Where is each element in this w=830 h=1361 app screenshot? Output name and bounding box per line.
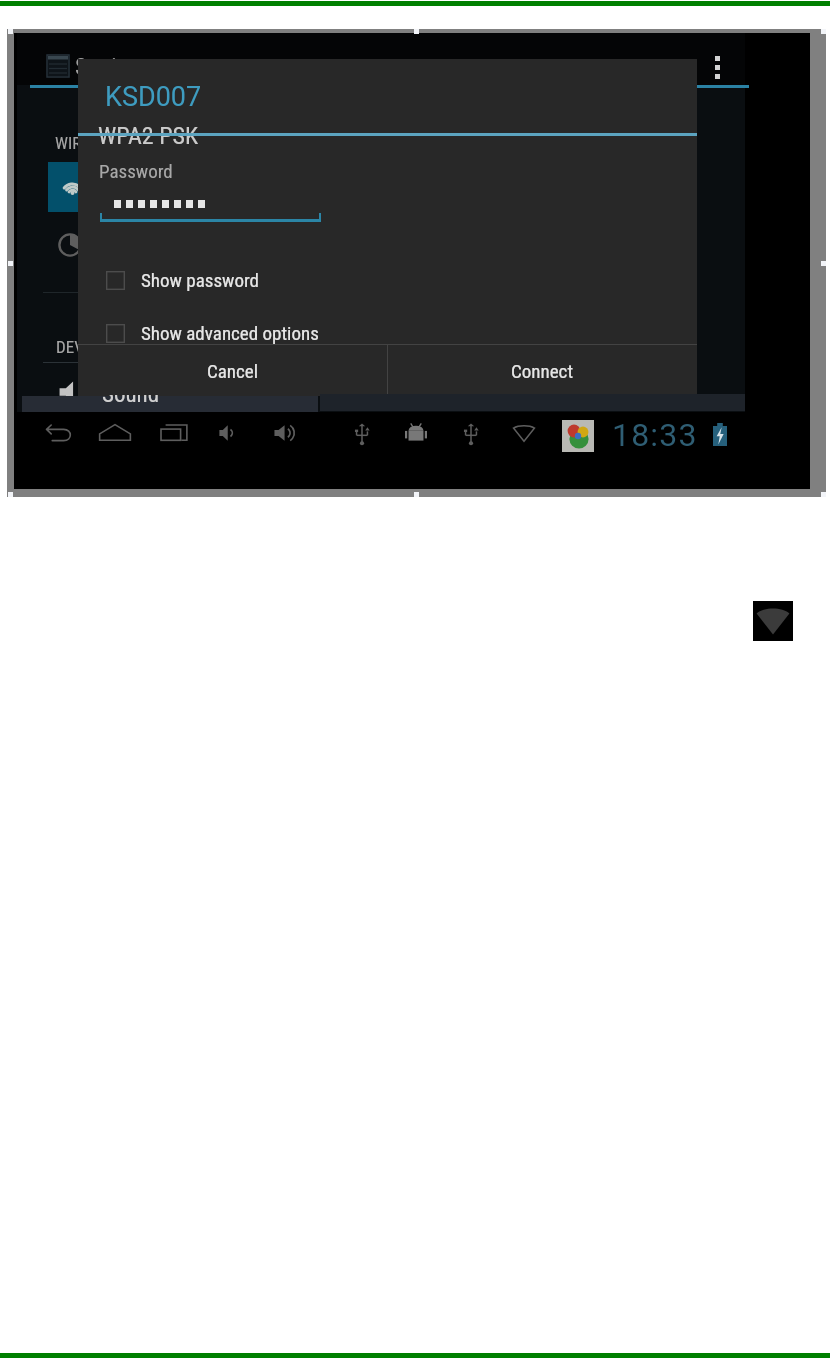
button[interactable]: Sound	[58, 379, 84, 405]
button[interactable]: Wi-Fi signal	[753, 601, 793, 641]
staticText: DEVICE	[56, 337, 107, 357]
staticText: Show advanced options	[141, 322, 319, 344]
other: USB	[354, 423, 370, 445]
button[interactable]: More options	[713, 56, 722, 79]
button[interactable]: Show password	[106, 269, 259, 291]
button[interactable]: Cancel	[78, 345, 387, 397]
staticText: Settings	[75, 54, 150, 81]
staticText: Password	[99, 160, 173, 182]
staticText: Cancel	[207, 360, 259, 382]
staticText: Connect	[511, 360, 574, 382]
staticText: Show password	[141, 269, 259, 291]
staticText: WPA2 PSK	[98, 122, 198, 150]
button[interactable]: Data usage	[58, 233, 82, 257]
staticText: WIRELESS & NETWORKS	[55, 133, 220, 153]
button[interactable]: Wi-Fi	[48, 162, 178, 212]
staticText: KSD007	[105, 81, 202, 113]
other: Wi-Fi not connected	[513, 425, 535, 442]
staticText: 18:33	[612, 416, 698, 454]
button[interactable]: Volume down	[219, 425, 238, 441]
button[interactable]: Recent apps	[160, 424, 188, 441]
button[interactable]: Volume up	[274, 425, 297, 441]
other: Android	[405, 423, 427, 445]
other: USB	[463, 423, 479, 445]
staticText: Sound	[102, 381, 160, 408]
button[interactable]: Connect	[388, 345, 697, 397]
button[interactable]: Back	[46, 425, 72, 442]
button[interactable]: Show advanced options	[106, 322, 319, 344]
button[interactable]: Home	[99, 424, 131, 441]
button[interactable]: Browser	[562, 420, 594, 452]
